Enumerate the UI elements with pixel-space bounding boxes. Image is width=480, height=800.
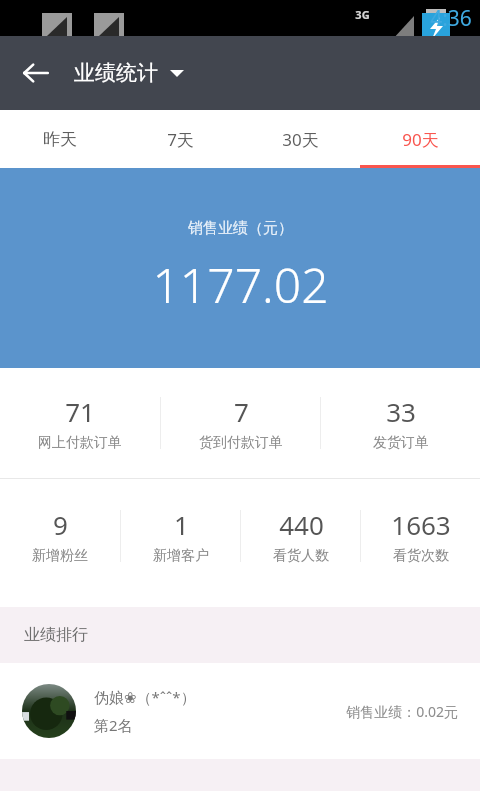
staticText: 看货人数 bbox=[273, 547, 329, 565]
button[interactable]: 30天 bbox=[240, 110, 360, 168]
staticText: 第2名 bbox=[94, 715, 133, 735]
staticText: 7 bbox=[234, 394, 249, 429]
staticText: 业绩排行 bbox=[24, 625, 88, 645]
button[interactable]: 伪娘❀（*ˆˆ*） bbox=[0, 663, 480, 759]
staticText: 71 bbox=[65, 394, 95, 429]
button[interactable]: 90天 bbox=[360, 110, 480, 168]
staticText: 看货次数 bbox=[393, 547, 449, 565]
staticText: 7天 bbox=[167, 128, 194, 151]
staticText: 440 bbox=[279, 507, 324, 542]
staticText: 网上付款订单 bbox=[38, 434, 122, 452]
staticText: 新增客户 bbox=[153, 547, 209, 565]
button[interactable]: 7天 bbox=[120, 110, 240, 168]
staticText: 昨天 bbox=[43, 129, 77, 150]
button[interactable]: 1 bbox=[153, 479, 209, 593]
staticText: 新增粉丝 bbox=[32, 547, 88, 565]
staticText: 发货订单 bbox=[373, 434, 429, 452]
button[interactable]: 9 bbox=[32, 479, 88, 593]
staticText: 销售业绩（元） bbox=[188, 219, 293, 238]
button[interactable]: 71 bbox=[38, 368, 122, 478]
staticText: 30天 bbox=[282, 128, 319, 151]
staticText: 销售业绩：0.02元 bbox=[346, 702, 458, 721]
staticText: 33 bbox=[386, 394, 416, 429]
staticText: 90天 bbox=[402, 128, 439, 151]
button[interactable]: 7 bbox=[199, 368, 283, 478]
button[interactable]: 昨天 bbox=[0, 110, 120, 168]
staticText: 1 bbox=[174, 507, 189, 542]
button[interactable]: 业绩统计 bbox=[70, 54, 188, 92]
staticText: 货到付款订单 bbox=[199, 434, 283, 452]
staticText: 4:36 bbox=[430, 4, 472, 33]
button[interactable]: 440 bbox=[273, 479, 329, 593]
staticText: 1177.02 bbox=[152, 252, 329, 317]
staticText: 1663 bbox=[391, 507, 451, 542]
staticText: 伪娘❀（*ˆˆ*） bbox=[94, 687, 196, 707]
staticText: 业绩统计 bbox=[74, 60, 158, 86]
button[interactable]: Back bbox=[10, 47, 62, 99]
button[interactable]: 1663 bbox=[391, 479, 451, 593]
button[interactable]: 33 bbox=[373, 368, 429, 478]
staticText: 9 bbox=[53, 507, 68, 542]
staticText: 3G bbox=[355, 7, 370, 22]
